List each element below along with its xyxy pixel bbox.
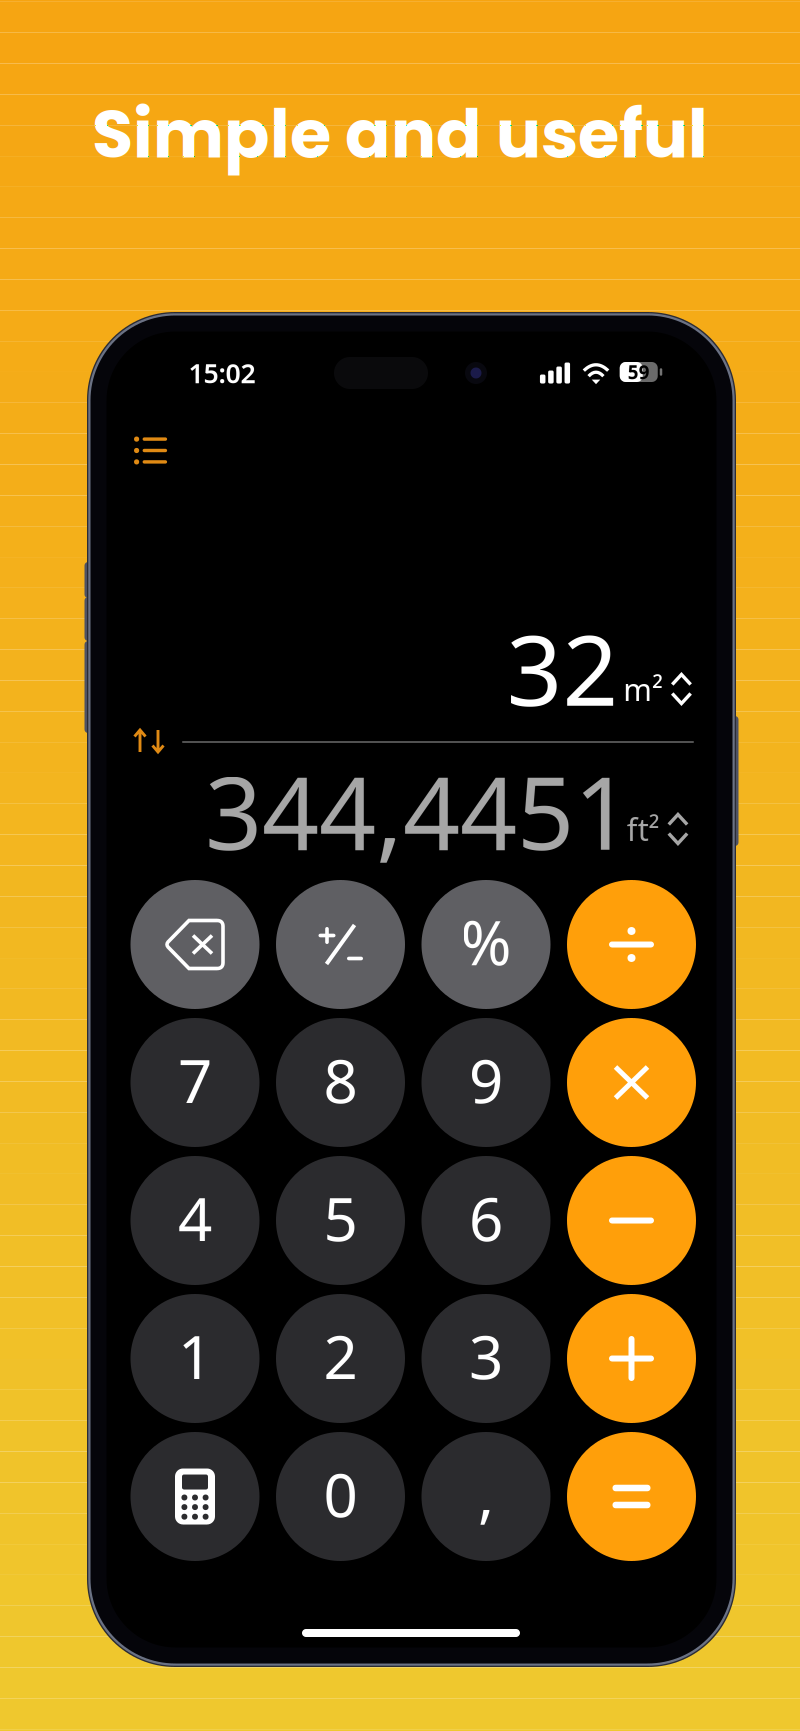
staticText: 9 <box>469 1040 503 1120</box>
staticText: ft² <box>627 809 660 849</box>
staticText: 0 <box>323 1454 357 1534</box>
button[interactable]: Delete <box>130 880 259 1009</box>
button[interactable]: Divide <box>567 880 696 1009</box>
staticText: 59 <box>628 360 650 384</box>
button[interactable]: Change target unit <box>623 803 693 855</box>
staticText: 1 <box>178 1316 212 1396</box>
button[interactable]: 1 <box>130 1294 259 1423</box>
staticText: 344,4451 <box>205 745 631 877</box>
button[interactable]: Percent <box>421 880 550 1009</box>
button[interactable]: Units list <box>126 428 175 473</box>
button[interactable]: Swap units <box>128 723 169 759</box>
button[interactable]: Decimal separator <box>421 1432 550 1561</box>
staticText: 2 <box>323 1316 357 1396</box>
staticText: 8 <box>323 1040 357 1120</box>
button[interactable]: Change source unit <box>619 663 697 715</box>
staticText: 32 <box>506 603 618 733</box>
staticText: % <box>460 901 511 982</box>
button[interactable]: 3 <box>421 1294 550 1423</box>
button[interactable]: Plus minus <box>276 880 405 1009</box>
button[interactable]: Equals <box>567 1432 696 1561</box>
button[interactable]: Add <box>567 1294 696 1423</box>
staticText: 5 <box>323 1178 357 1258</box>
button[interactable]: 4 <box>130 1156 259 1285</box>
button[interactable]: Multiply <box>567 1018 696 1147</box>
button[interactable]: 0 <box>276 1432 405 1561</box>
staticText: , <box>478 1454 494 1533</box>
staticText: Simple and useful <box>92 87 708 181</box>
staticText: 3 <box>469 1316 503 1396</box>
staticText: m² <box>623 669 663 709</box>
button[interactable]: 7 <box>130 1018 259 1147</box>
staticText: 7 <box>178 1040 212 1120</box>
staticText: 15:02 <box>188 355 255 391</box>
button[interactable]: Subtract <box>567 1156 696 1285</box>
button[interactable]: 8 <box>276 1018 405 1147</box>
staticText: 4 <box>178 1178 212 1258</box>
button[interactable]: 9 <box>421 1018 550 1147</box>
button[interactable]: 5 <box>276 1156 405 1285</box>
button[interactable]: Calculator <box>130 1432 259 1561</box>
staticText: 6 <box>469 1178 503 1258</box>
button[interactable]: 6 <box>421 1156 550 1285</box>
button[interactable]: 2 <box>276 1294 405 1423</box>
